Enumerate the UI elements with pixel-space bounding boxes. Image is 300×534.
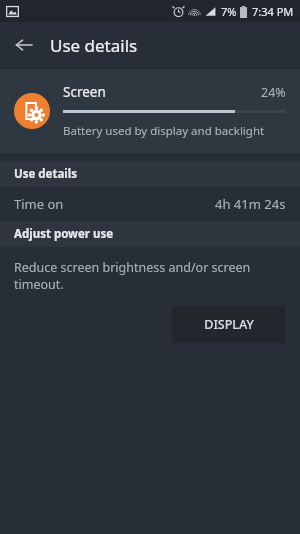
staticText: Screen: [63, 83, 106, 101]
button[interactable]: Back: [8, 29, 40, 61]
staticText: DISPLAY: [204, 316, 254, 333]
staticText: 4h 41m 24s: [215, 195, 286, 213]
staticText: Use details: [50, 34, 138, 57]
staticText: 24%: [261, 84, 286, 101]
staticText: Use details: [14, 166, 77, 182]
staticText: Time on: [14, 195, 64, 213]
staticText: 7%: [221, 4, 237, 19]
staticText: Adjust power use: [14, 226, 114, 242]
button[interactable]: Time on: [0, 187, 300, 221]
button[interactable]: DISPLAY: [172, 306, 285, 343]
staticText: Battery used by display and backlight: [63, 123, 265, 139]
staticText: Reduce screen brightness and/or screen t…: [14, 259, 286, 293]
staticText: 7:34 PM: [252, 4, 294, 19]
